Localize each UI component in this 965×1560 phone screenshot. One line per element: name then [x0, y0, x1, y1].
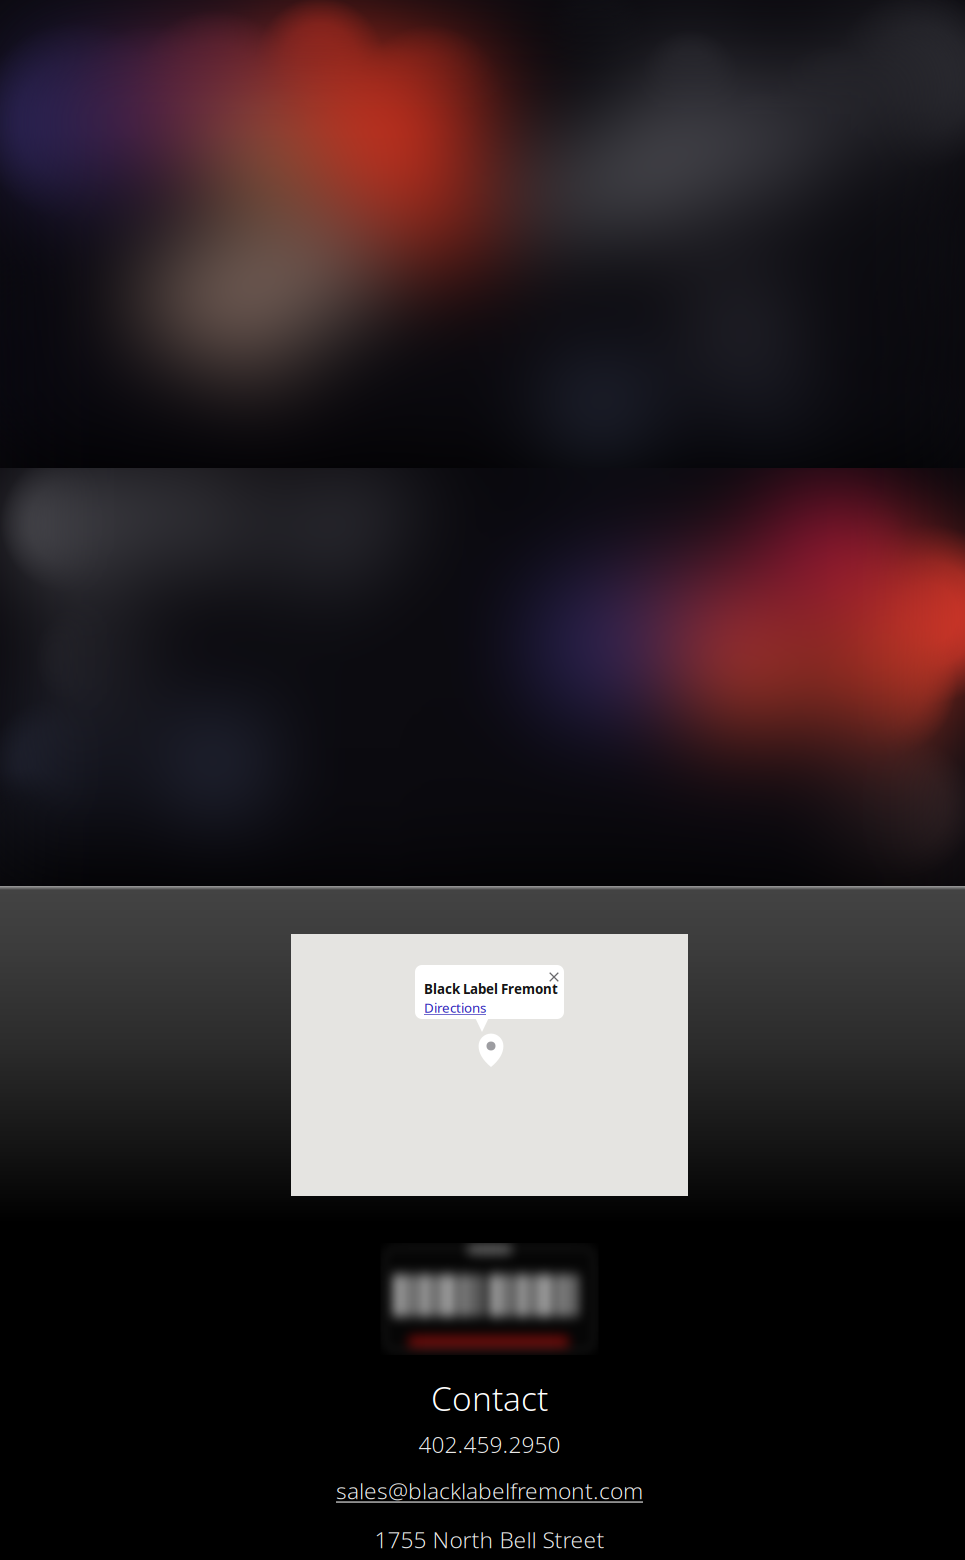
staticText: Black Label Fremont: [424, 980, 558, 998]
staticText: Contact: [431, 1376, 548, 1420]
staticText: sales@blacklabelfremont.com: [336, 1475, 643, 1505]
button[interactable]: Close: [545, 968, 563, 986]
staticText: Directions: [424, 999, 486, 1016]
staticText: 402.459.2950: [418, 1429, 560, 1459]
button[interactable]: Directions: [424, 999, 486, 1016]
button[interactable]: sales@blacklabelfremont.com: [336, 1475, 643, 1505]
staticText: 1755 North Bell Street: [374, 1524, 604, 1555]
